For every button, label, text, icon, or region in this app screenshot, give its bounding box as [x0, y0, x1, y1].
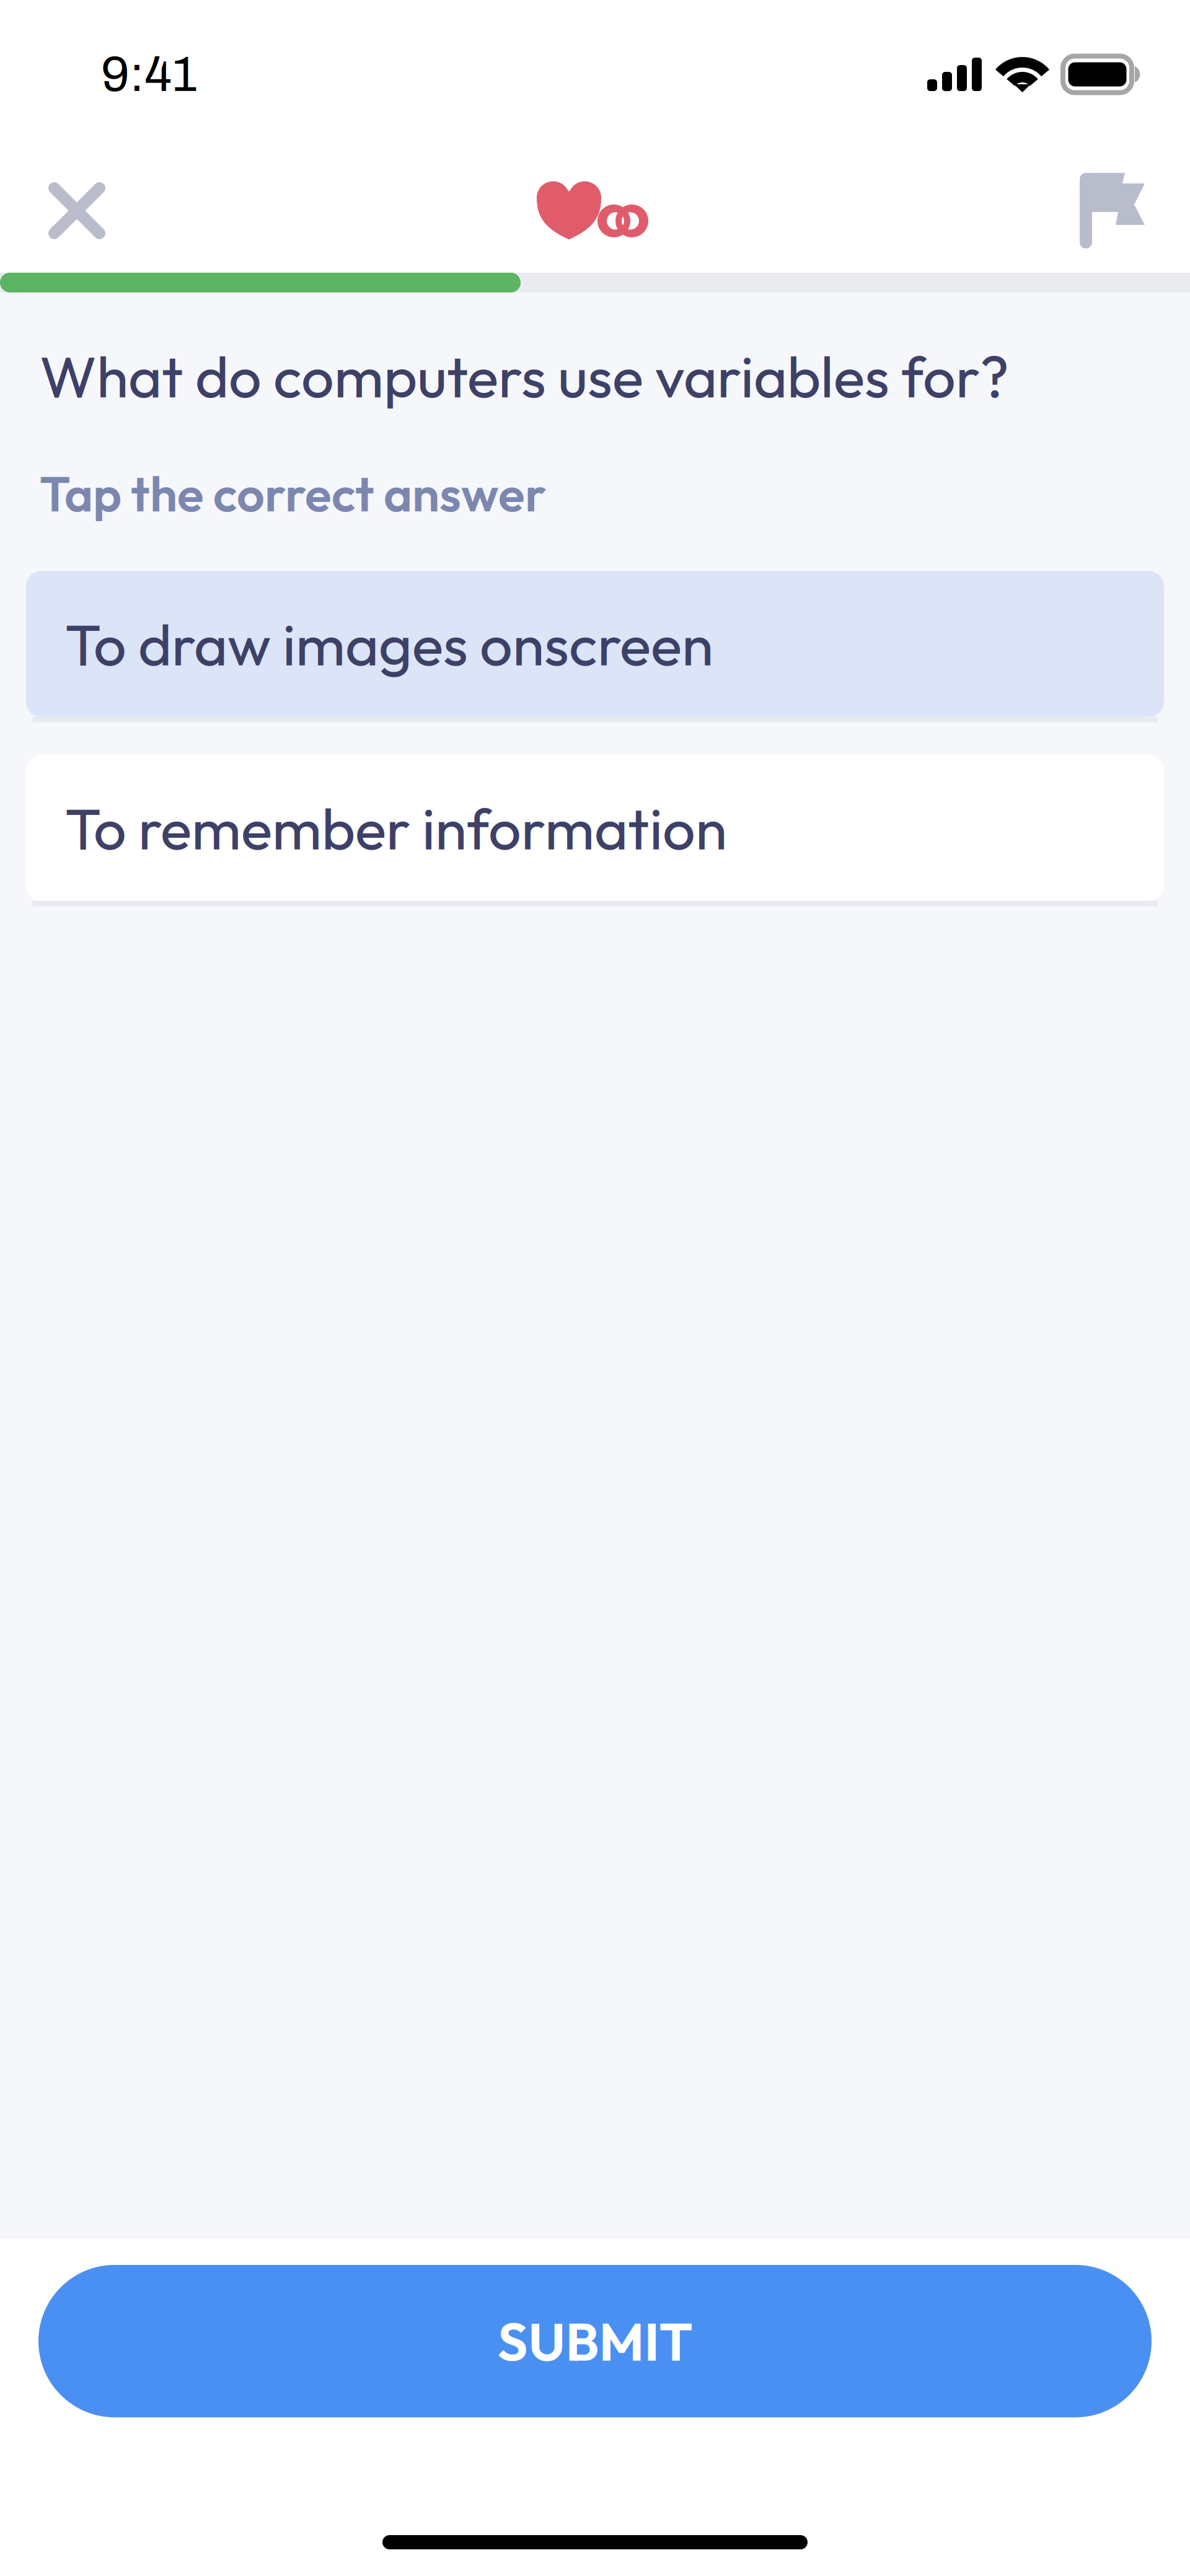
- staticText: What do computers use variables for?: [40, 340, 1009, 412]
- button[interactable]: Close lesson: [0, 149, 140, 273]
- button[interactable]: Report a problem: [1045, 149, 1190, 273]
- button[interactable]: SUBMIT: [38, 2265, 1152, 2417]
- staticText: 9:41: [101, 47, 198, 101]
- staticText: To draw images onscreen: [65, 608, 713, 680]
- button[interactable]: To draw images onscreen: [26, 571, 1164, 717]
- staticText: To remember information: [65, 792, 727, 864]
- staticText: Tap the correct answer: [40, 463, 546, 524]
- staticText: SUBMIT: [497, 2308, 693, 2374]
- button[interactable]: To remember information: [26, 755, 1164, 901]
